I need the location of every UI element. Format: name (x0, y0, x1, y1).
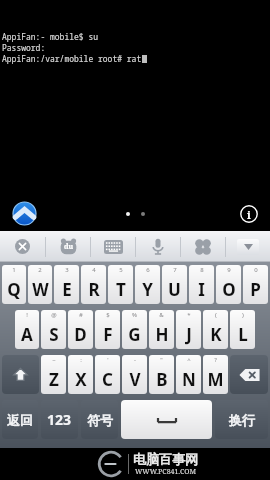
staticText: ! (26, 311, 28, 319)
staticText: % (132, 311, 137, 319)
staticText: " (160, 356, 163, 364)
staticText: Q (7, 278, 21, 301)
staticText: @ (51, 311, 57, 319)
button[interactable]: 2 (28, 265, 52, 304)
staticText: R (88, 278, 100, 301)
staticText: ( (215, 311, 217, 319)
button[interactable]: ~ (41, 355, 66, 394)
staticText: V (129, 368, 141, 391)
staticText: 电脑百事网 (133, 451, 198, 467)
staticText: J (186, 323, 192, 346)
button[interactable]: Info (240, 205, 258, 223)
button[interactable]: 4 (81, 265, 106, 304)
button[interactable]: More options (181, 231, 225, 262)
button[interactable]: 8 (189, 265, 214, 304)
staticText: X (75, 368, 87, 391)
staticText: 123 (47, 410, 72, 429)
button[interactable]: ' (95, 355, 120, 394)
button[interactable]: 返回 (2, 400, 38, 439)
button[interactable]: 换行 (215, 400, 268, 439)
staticText: W (32, 278, 49, 301)
staticText: & (159, 311, 164, 319)
staticText: M (207, 368, 224, 391)
button[interactable]: 3 (54, 265, 79, 304)
button[interactable]: & (149, 310, 174, 349)
button[interactable]: Space (121, 400, 212, 439)
staticText: 换行 (229, 412, 255, 428)
button[interactable]: % (122, 310, 147, 349)
button[interactable]: Backspace (230, 355, 268, 394)
staticText: O (222, 278, 236, 301)
button[interactable]: 0 (243, 265, 268, 304)
staticText: 7 (173, 266, 177, 274)
button[interactable]: 1 (2, 265, 26, 304)
staticText: 5 (119, 266, 123, 274)
button[interactable]: Close keyboard (0, 231, 45, 262)
staticText: Y (142, 278, 153, 301)
staticText: 1 (12, 266, 16, 274)
staticText: WWW.PC841.COM (135, 467, 197, 477)
staticText: H (155, 323, 169, 346)
staticText: * (187, 311, 191, 319)
staticText: C (102, 368, 113, 391)
button[interactable]: " (149, 355, 174, 394)
button[interactable]: : (68, 355, 93, 394)
staticText: : (80, 356, 82, 364)
staticText: T (116, 278, 126, 301)
staticText: 4 (92, 266, 96, 274)
staticText: G (128, 323, 141, 346)
button[interactable]: ! (15, 310, 39, 349)
button[interactable]: # (68, 310, 93, 349)
staticText: du (64, 242, 74, 252)
button[interactable]: $ (95, 310, 120, 349)
staticText: ^ (187, 356, 191, 364)
staticText: 返回 (7, 412, 33, 428)
staticText: I (198, 278, 205, 301)
staticText: ) (242, 311, 244, 319)
staticText: P (250, 278, 261, 301)
staticText: B (156, 368, 168, 391)
button[interactable]: Keyboard layout (91, 231, 135, 262)
button[interactable]: 5 (108, 265, 133, 304)
staticText: ~ (52, 356, 56, 364)
staticText: D (74, 323, 87, 346)
button[interactable]: Scroll up (13, 202, 36, 225)
button[interactable]: ^ (176, 355, 201, 394)
button[interactable]: @ (41, 310, 66, 349)
button[interactable]: - (122, 355, 147, 394)
button[interactable]: ) (230, 310, 255, 349)
button[interactable]: * (176, 310, 201, 349)
staticText: AppiFan:- mobile$ su (2, 31, 98, 42)
button[interactable]: 符号 (81, 400, 118, 439)
staticText: F (103, 323, 113, 346)
staticText: # (79, 311, 83, 319)
staticText: 9 (227, 266, 231, 274)
staticText: ' (107, 356, 109, 364)
staticText: S (49, 323, 59, 346)
button[interactable]: Shift (2, 355, 39, 394)
button[interactable]: Baidu input (46, 231, 90, 262)
button[interactable]: Voice input (136, 231, 180, 262)
button[interactable]: 6 (135, 265, 160, 304)
staticText: - (134, 356, 136, 364)
button[interactable]: 123 (41, 400, 78, 439)
staticText: ? (214, 356, 217, 364)
staticText: 6 (146, 266, 150, 274)
staticText: $ (106, 311, 110, 319)
button[interactable]: ( (203, 310, 228, 349)
staticText: A (21, 323, 33, 346)
button[interactable]: ? (203, 355, 228, 394)
staticText: Password: (2, 42, 46, 53)
button[interactable]: 7 (162, 265, 187, 304)
staticText: i (247, 207, 251, 222)
button[interactable]: 9 (216, 265, 241, 304)
staticText: 8 (200, 266, 204, 274)
staticText: L (238, 323, 248, 346)
staticText: N (182, 368, 196, 391)
button[interactable]: Hide keyboard (226, 231, 270, 262)
staticText: K (210, 323, 222, 346)
staticText: AppiFan:/var/mobile root# rat (2, 53, 142, 64)
staticText: 2 (38, 266, 42, 274)
staticText: 符号 (87, 412, 113, 428)
staticText: Z (49, 368, 59, 391)
